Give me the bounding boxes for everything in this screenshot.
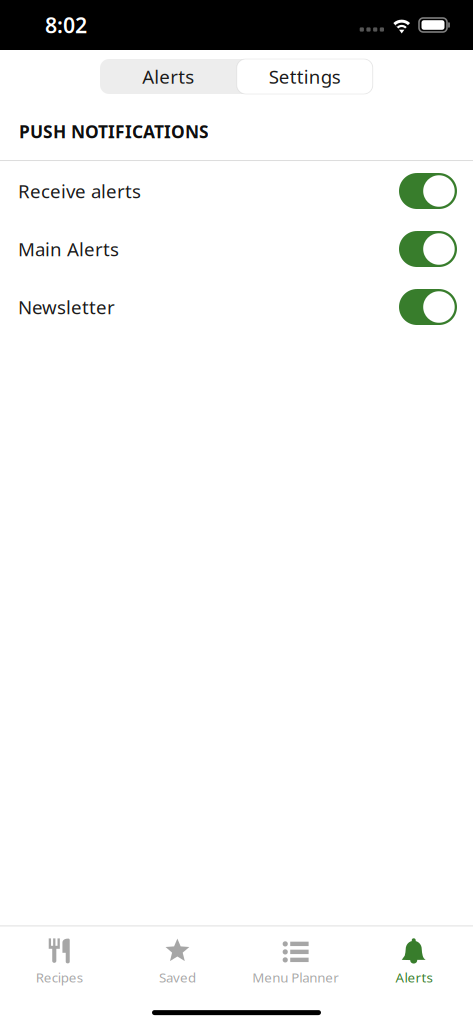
button[interactable]: Settings [236,59,373,94]
staticText: Settings [269,64,341,89]
staticText: Newsletter [18,295,115,319]
button[interactable]: Recipes [0,926,118,1002]
button[interactable]: Main Alerts [0,220,473,278]
staticText: Alerts [395,968,432,986]
button[interactable]: Menu Planner [236,926,355,1002]
button[interactable]: Alerts [355,926,473,1002]
staticText: Recipes [36,968,83,986]
staticText: Receive alerts [18,179,141,203]
staticText: Menu Planner [252,968,339,986]
staticText: Alerts [142,64,194,89]
button[interactable]: Receive alerts [0,162,473,220]
button[interactable]: Alerts [100,59,236,94]
staticText: 8:02 [45,11,87,39]
staticText: Main Alerts [18,237,119,261]
staticText: PUSH NOTIFICATIONS [19,120,209,143]
button[interactable]: Saved [118,926,236,1002]
button[interactable]: Newsletter [0,278,473,336]
staticText: Saved [159,968,196,986]
